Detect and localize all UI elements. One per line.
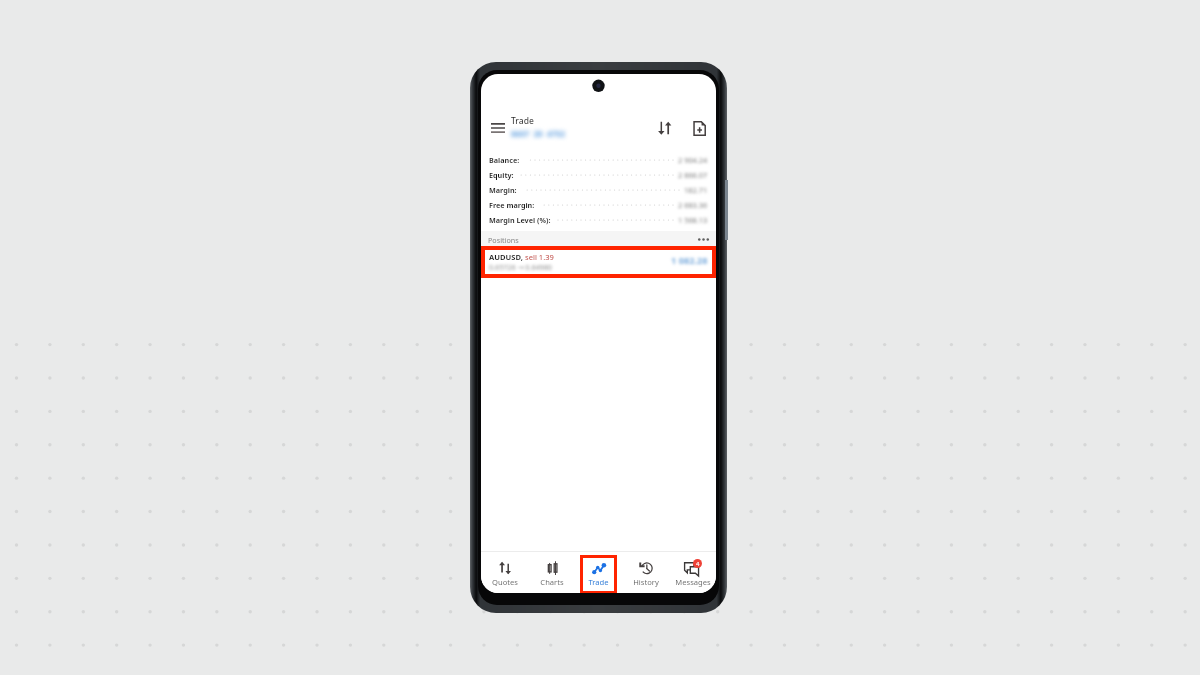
button[interactable]: 4	[669, 551, 716, 593]
button[interactable]: Quotes	[481, 551, 528, 593]
staticText: AUDUSD,	[489, 252, 523, 262]
staticText: 2 904.24	[678, 155, 708, 165]
button[interactable]: History	[622, 551, 669, 593]
staticText: Balance:	[489, 155, 520, 165]
staticText: sell 1.39	[525, 252, 554, 262]
staticText: 0.65726 → 0.64980	[489, 262, 552, 272]
staticText: 8607 20 4752	[511, 128, 566, 139]
staticText: 4	[696, 560, 700, 568]
staticText: 2 866.07	[678, 170, 708, 180]
staticText: Margin:	[489, 185, 517, 195]
staticText: History	[633, 577, 659, 587]
button[interactable]: Charts	[528, 551, 575, 593]
staticText: Messages	[675, 577, 711, 587]
button[interactable]: Positions	[481, 231, 716, 246]
staticText: Equity:	[489, 170, 514, 180]
staticText: 1 082.28	[671, 254, 708, 267]
staticText: Free margin:	[489, 200, 535, 210]
button[interactable]: Menu	[488, 119, 508, 137]
button[interactable]: Sort	[653, 116, 677, 140]
staticText: Trade	[588, 577, 609, 587]
staticText: Quotes	[492, 577, 518, 587]
button[interactable]: New order	[687, 116, 711, 140]
staticText: 1 568.13	[678, 215, 708, 225]
button[interactable]: Trade	[575, 551, 622, 593]
button[interactable]: More options	[695, 232, 711, 246]
staticText: 2 683.36	[678, 200, 708, 210]
staticText: 182.71	[684, 185, 708, 195]
staticText: Positions	[488, 235, 519, 245]
staticText: Margin Level (%):	[489, 215, 551, 225]
staticText: Trade	[511, 115, 534, 127]
staticText: Charts	[540, 577, 564, 587]
button[interactable]: AUDUSD,	[485, 250, 712, 274]
